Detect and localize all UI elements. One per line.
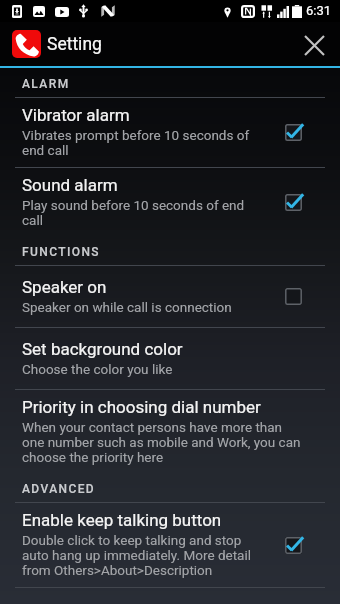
button[interactable]: Enabled [285,124,302,141]
staticText: Choose the color you like [22,362,173,377]
staticText: 6:31 [306,3,332,18]
button[interactable]: Disabled [285,288,302,305]
staticText: Double click to keep talking and stop au… [22,533,262,578]
button[interactable]: Enable keep talking button [0,503,340,587]
staticText: ADVANCED [22,482,96,496]
staticText: Vibrates prompt before 10 seconds of end… [22,128,262,158]
button[interactable]: Vibrator alarm [0,98,340,167]
button[interactable]: Sound alarm [0,168,340,237]
staticText: FUNCTIONS [22,245,100,259]
staticText: Play sound before 10 seconds of end call [22,198,262,228]
button[interactable]: Speaker on [0,266,340,327]
button[interactable]: Priority in choosing dial number [0,390,340,474]
staticText: ALARM [22,77,70,91]
staticText: Setting [47,34,102,55]
button[interactable]: Enabled [285,194,302,211]
staticText: Priority in choosing dial number [22,397,261,417]
button[interactable]: Close [293,22,337,66]
staticText: When your contact persons have more than… [22,420,304,465]
staticText: Speaker on while call is connection [22,300,232,315]
button[interactable]: Set background color [0,328,340,389]
staticText: Sound alarm [22,175,118,195]
staticText: Vibrator alarm [22,105,130,125]
staticText: Enable keep talking button [22,510,222,530]
button[interactable]: Enabled [285,537,302,554]
staticText: Set background color [22,339,183,359]
staticText: Speaker on [22,277,107,297]
